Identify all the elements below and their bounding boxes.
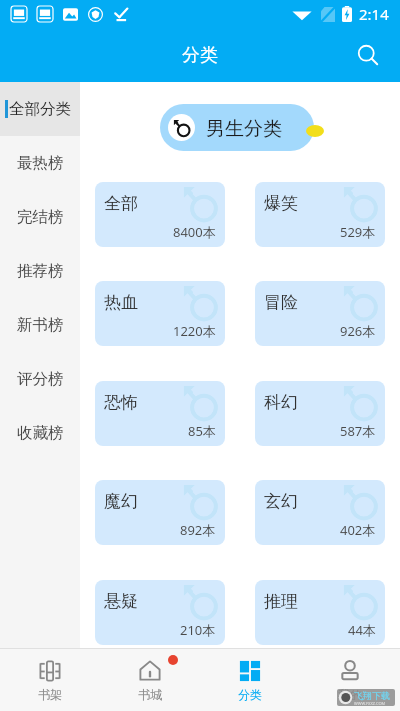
staticText: 书城 [138,687,162,702]
staticText: 悬疑 [104,591,138,612]
staticText: 爆笑 [264,193,298,214]
button[interactable]: 新书榜 [0,298,80,352]
button[interactable]: 魔幻 [95,480,225,545]
staticText: 926本 [340,322,376,340]
staticText: 完结榜 [17,207,64,227]
staticText: 魔幻 [104,491,138,512]
button[interactable]: Search [350,37,386,73]
staticText: 529本 [340,223,376,241]
button[interactable]: 全部 [95,182,225,247]
button[interactable]: 收藏榜 [0,406,80,460]
staticText: 最热榜 [17,153,64,173]
staticText: 玄幻 [264,491,298,512]
button[interactable]: 推荐榜 [0,244,80,298]
staticText: 恐怖 [104,392,138,413]
staticText: 2:14 [359,4,389,24]
staticText: 210本 [180,621,216,639]
staticText: 全部 [104,193,138,214]
button[interactable]: 全部分类 [0,82,80,136]
button[interactable]: 书架 [0,649,100,711]
staticText: 评分榜 [17,369,64,389]
button[interactable]: 评分榜 [0,352,80,406]
staticText: 85本 [188,422,216,440]
button[interactable]: 恐怖 [95,381,225,446]
staticText: 推荐榜 [17,261,64,281]
staticText: 44本 [348,621,376,639]
button[interactable]: 完结榜 [0,190,80,244]
staticText: 新书榜 [17,315,64,335]
staticText: 1220本 [173,322,216,340]
staticText: 书架 [38,687,62,702]
staticText: 冒险 [264,292,298,313]
staticText: 科幻 [264,392,298,413]
button[interactable]: 书城 [100,649,200,711]
staticText: 分类 [182,44,218,67]
button[interactable]: 冒险 [255,281,385,346]
button[interactable]: 最热榜 [0,136,80,190]
staticText: 热血 [104,292,138,313]
button[interactable]: 分类 [200,649,300,711]
staticText: 推理 [264,591,298,612]
staticText: 892本 [180,521,216,539]
staticText: 587本 [340,422,376,440]
staticText: 我的 [338,687,362,702]
button[interactable]: 爆笑 [255,182,385,247]
button[interactable]: 我的 [300,649,400,711]
button[interactable]: 男生分类 [160,104,314,151]
staticText: 402本 [340,521,376,539]
staticText: 8400本 [173,223,216,241]
button[interactable]: 科幻 [255,381,385,446]
staticText: 全部分类 [9,99,71,119]
button[interactable]: 玄幻 [255,480,385,545]
staticText: 收藏榜 [17,423,64,443]
button[interactable]: 热血 [95,281,225,346]
button[interactable]: 悬疑 [95,580,225,645]
staticText: 分类 [238,687,262,702]
button[interactable]: 推理 [255,580,385,645]
staticText: 男生分类 [206,117,282,141]
staticText: WWW.FXXZ.COM [354,701,386,706]
staticText: 飞翔下载 [354,690,390,701]
